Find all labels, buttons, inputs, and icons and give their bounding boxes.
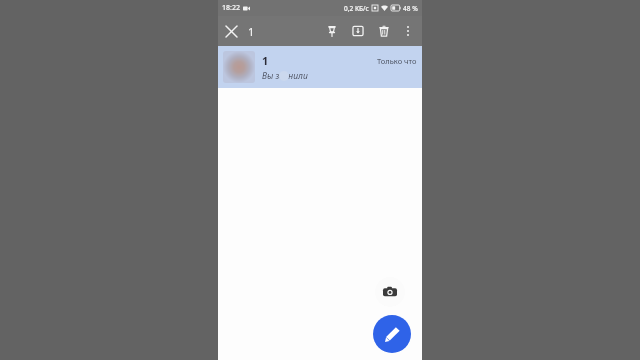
button[interactable]: Archive: [345, 18, 371, 44]
staticText: 1: [248, 24, 255, 39]
button[interactable]: Delete: [371, 18, 397, 44]
staticText: 48 %: [403, 4, 418, 13]
staticText: 1: [262, 53, 269, 68]
button[interactable]: Close selection: [218, 18, 244, 44]
staticText: 0,2 KБ/c: [344, 4, 369, 13]
staticText: 18:22: [222, 3, 240, 13]
staticText: Вы звонили: [262, 70, 308, 82]
button[interactable]: More options: [397, 20, 419, 42]
button[interactable]: Compose new message: [373, 315, 411, 353]
button[interactable]: Pin: [319, 18, 345, 44]
button[interactable]: Camera: [375, 277, 405, 307]
staticText: Только что: [377, 56, 417, 66]
button[interactable]: 1: [218, 46, 422, 88]
